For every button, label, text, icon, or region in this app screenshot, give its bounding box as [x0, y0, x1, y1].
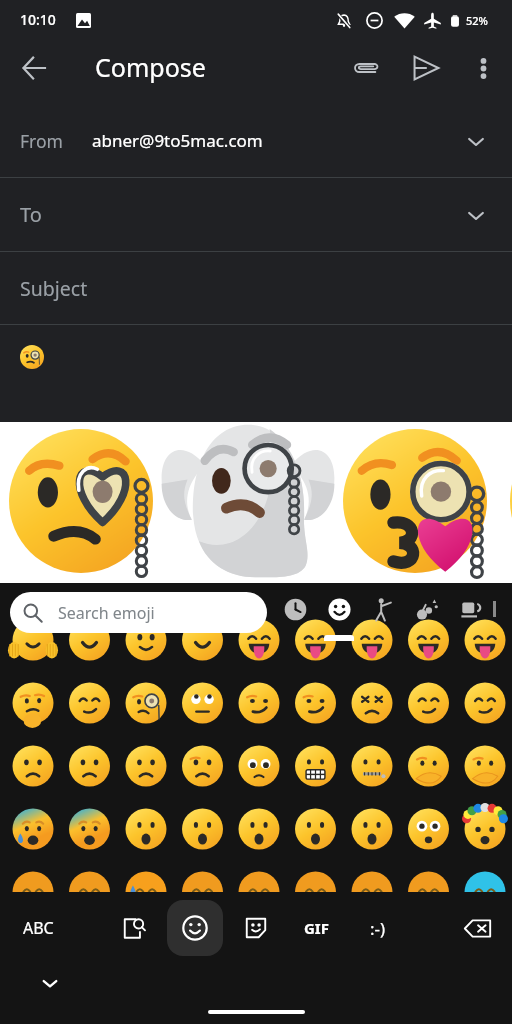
button[interactable]: :-): [347, 900, 408, 956]
staticText: GIF: [304, 918, 329, 938]
button[interactable]: Emoji suggestion 4: [501, 422, 512, 583]
button[interactable]: Search emoji: [10, 592, 267, 633]
staticText: To: [20, 201, 42, 228]
staticText: From: [20, 129, 63, 153]
staticText: ABC: [23, 917, 54, 939]
button[interactable]: Recently used: [273, 583, 317, 641]
staticText: Subject: [20, 275, 88, 302]
button[interactable]: Animals and nature: [405, 583, 449, 641]
button[interactable]: Back: [12, 46, 56, 90]
staticText: :-): [370, 917, 386, 940]
staticText: Compose: [95, 50, 206, 84]
button[interactable]: Emoji suggestion 1: [0, 422, 167, 583]
button[interactable]: Food and drink: [449, 583, 493, 641]
button[interactable]: More options: [460, 45, 506, 91]
button[interactable]: GIF: [286, 900, 347, 956]
staticText: Search emoji: [58, 602, 155, 624]
staticText: 52%: [466, 13, 488, 28]
staticText: abner@9to5mac.com: [92, 129, 263, 152]
button[interactable]: Stickers: [225, 900, 286, 956]
button[interactable]: Search stickers: [103, 900, 164, 956]
button[interactable]: People and body: [361, 583, 405, 641]
button[interactable]: Backspace: [445, 900, 509, 956]
button[interactable]: From: [0, 104, 512, 177]
button[interactable]: To: [0, 178, 512, 251]
button[interactable]: Smileys and emotion: [317, 583, 361, 641]
button[interactable]: [0, 325, 512, 422]
button[interactable]: Hide keyboard: [36, 969, 64, 997]
button[interactable]: ABC: [0, 900, 76, 956]
button[interactable]: Send: [403, 45, 449, 91]
staticText: 10:10: [20, 10, 56, 29]
button[interactable]: Emoji suggestion 2: [167, 422, 334, 583]
button[interactable]: Emoji suggestion 3: [334, 422, 501, 583]
button[interactable]: Subject: [0, 252, 512, 324]
button[interactable]: Emoji: [164, 900, 225, 956]
button[interactable]: Attach file: [343, 45, 389, 91]
